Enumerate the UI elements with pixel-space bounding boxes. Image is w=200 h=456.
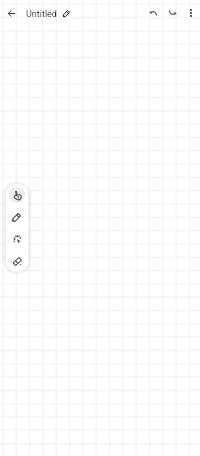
button[interactable]: Redo [165,5,181,21]
button[interactable]: Laser pointer [9,231,25,247]
staticText: Untitled [26,9,57,20]
button[interactable]: Back [3,5,20,22]
button[interactable]: Pen [9,209,25,225]
button[interactable]: Select [9,187,25,203]
button[interactable]: More options [183,5,199,21]
button[interactable]: Eraser [9,253,25,269]
button[interactable]: Rename [59,7,73,21]
button[interactable]: Undo [145,5,161,21]
